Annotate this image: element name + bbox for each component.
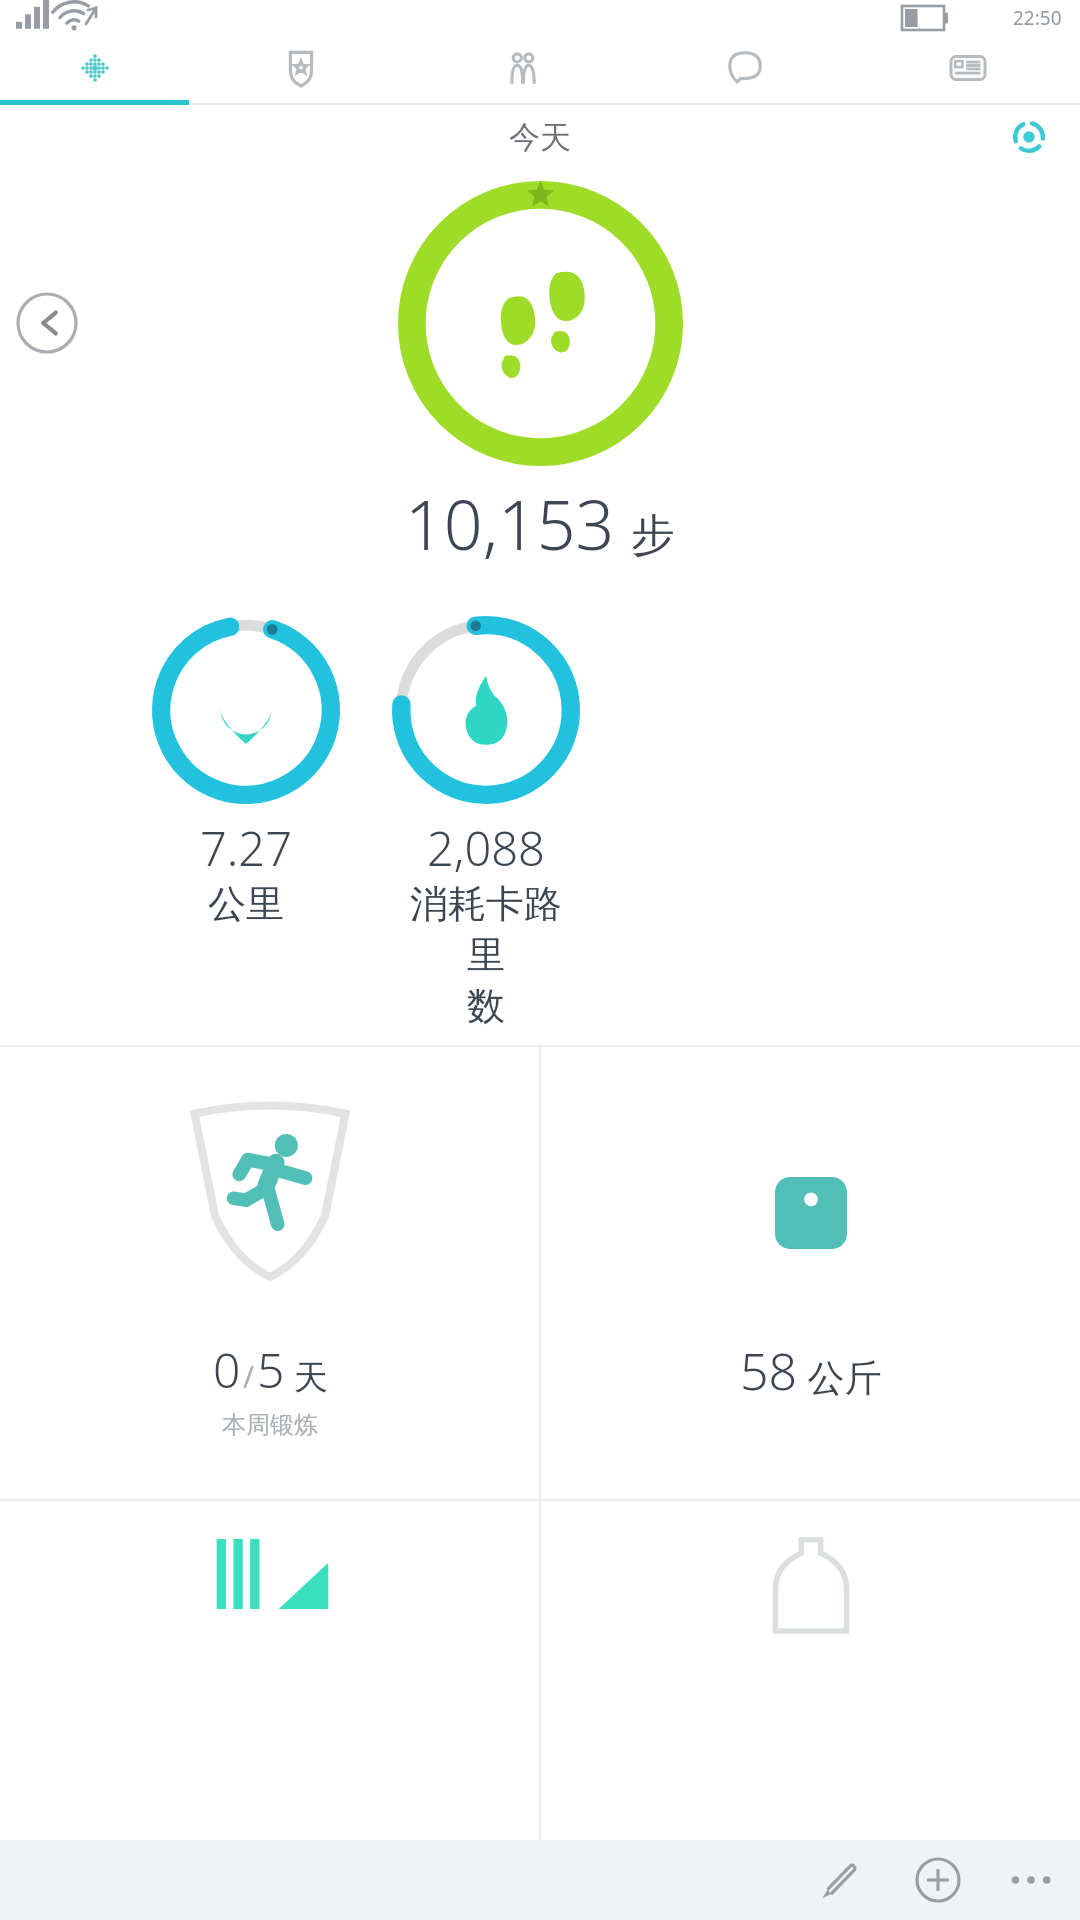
button[interactable]: Distance (152, 616, 340, 928)
staticText: 5 (257, 1337, 285, 1402)
staticText: 22:50 (1013, 5, 1062, 31)
staticText: 今天 (509, 118, 571, 157)
button[interactable]: More options (988, 1840, 1074, 1920)
button[interactable]: Steps goal reached (398, 181, 683, 466)
staticText: 2,088 (427, 816, 545, 880)
button[interactable] (541, 1501, 1080, 1840)
button[interactable]: Friends (412, 36, 634, 100)
staticText: 消耗卡路里 数 (392, 880, 580, 1031)
staticText: 公斤 (798, 1351, 882, 1402)
staticText: 步 (631, 508, 675, 563)
button[interactable] (0, 1501, 539, 1840)
button[interactable]: Calories burned (392, 616, 580, 1031)
button[interactable]: Account (856, 36, 1080, 100)
button[interactable]: Sync device (1000, 108, 1058, 166)
staticText: 0 (213, 1337, 241, 1402)
staticText: 10,153 (405, 477, 615, 570)
staticText: 天 (285, 1353, 328, 1399)
button[interactable]: Messages (634, 36, 856, 100)
button[interactable]: 0 (0, 1047, 539, 1499)
staticText: 58 (740, 1337, 798, 1405)
button[interactable]: Edit (788, 1840, 888, 1920)
staticText: / (243, 1356, 255, 1397)
staticText: 7.27 (200, 816, 292, 880)
button[interactable]: Add (888, 1840, 988, 1920)
button[interactable]: Challenges (190, 36, 412, 100)
button[interactable]: Dashboard (0, 36, 190, 100)
staticText: 本周锻炼 (222, 1410, 318, 1440)
button[interactable]: 58 (541, 1047, 1080, 1499)
staticText: 公里 (208, 880, 284, 928)
button[interactable]: Previous day (16, 292, 78, 354)
